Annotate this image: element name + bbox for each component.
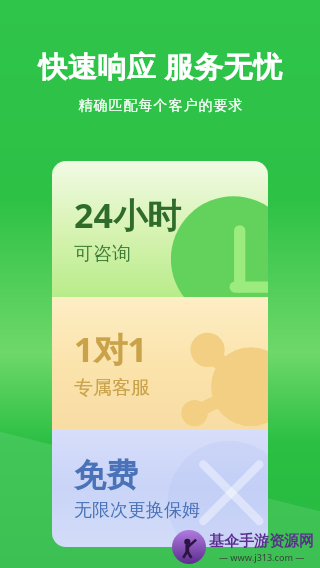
button[interactable]: 24小时: [52, 161, 268, 297]
staticText: 基伞手游资源网: [209, 532, 314, 551]
staticText: 精确匹配每个客户的要求: [78, 97, 243, 115]
other: Watermark: [172, 530, 314, 564]
staticText: 免费: [74, 455, 138, 495]
staticText: — www.j313.com —: [219, 551, 305, 563]
staticText: 1对1: [74, 326, 147, 372]
staticText: 专属客服: [74, 376, 150, 400]
button[interactable]: 免费: [52, 429, 268, 547]
staticText: 快速响应 服务无忧: [38, 46, 283, 86]
staticText: 24小时: [74, 192, 181, 238]
button[interactable]: 1对1: [52, 297, 268, 429]
staticText: 可咨询: [74, 242, 131, 266]
staticText: 无限次更换保姆: [74, 499, 200, 522]
